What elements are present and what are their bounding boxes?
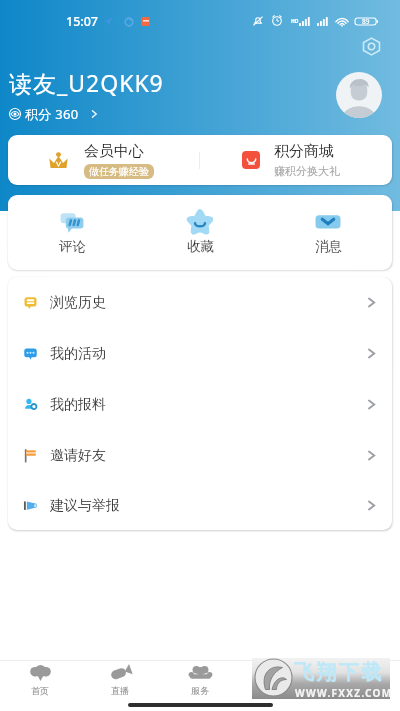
staticText: 直播 (111, 685, 129, 696)
staticText: 邀请好友 (50, 447, 106, 465)
button[interactable]: 邀请好友 (8, 430, 392, 481)
button[interactable]: Settings (358, 33, 384, 59)
staticText: WWW.FXXZ.COM (295, 686, 393, 700)
staticText: 赚积分换大礼 (274, 164, 340, 178)
staticText: 读友_U2QKK9 (9, 67, 164, 98)
staticText: 我的活动 (50, 345, 106, 363)
button[interactable]: 服务 (160, 661, 240, 700)
button[interactable]: 积分商城 (200, 135, 392, 185)
staticText: 消息 (315, 238, 342, 255)
staticText: 积分商城 (274, 142, 334, 161)
staticText: 评论 (59, 238, 86, 255)
staticText: 建议与举报 (50, 497, 120, 515)
button[interactable]: 我的 (320, 661, 400, 700)
staticText: 积分 360 (25, 105, 79, 123)
button[interactable]: 消息 (264, 195, 392, 270)
button[interactable]: 我的活动 (8, 328, 392, 379)
button[interactable]: 会员中心 (8, 135, 199, 185)
staticText: 圈子 (271, 685, 289, 696)
staticText: 服务 (191, 685, 209, 696)
staticText: 我的 (351, 685, 369, 696)
button[interactable]: 评论 (8, 195, 136, 270)
button[interactable]: 首页 (0, 661, 80, 700)
button[interactable]: 建议与举报 (8, 481, 392, 530)
staticText: 我的报料 (50, 396, 106, 414)
button[interactable]: 圈子 (240, 661, 320, 700)
staticText: 做任务赚经验 (89, 165, 149, 178)
button[interactable]: 直播 (80, 661, 160, 700)
staticText: 飞翔下载 (294, 660, 384, 685)
staticText: 89 (362, 17, 370, 26)
button[interactable]: 收藏 (136, 195, 264, 270)
button[interactable]: 浏览历史 (8, 277, 392, 328)
staticText: 浏览历史 (50, 294, 106, 312)
staticText: 首页 (31, 685, 49, 696)
staticText: 15:07 (66, 13, 99, 30)
staticText: HD (291, 18, 299, 25)
staticText: 收藏 (187, 238, 214, 255)
button[interactable]: Profile photo (336, 72, 382, 118)
staticText: 会员中心 (84, 142, 144, 161)
button[interactable]: 积分 360 (9, 105, 102, 123)
button[interactable]: 我的报料 (8, 379, 392, 430)
